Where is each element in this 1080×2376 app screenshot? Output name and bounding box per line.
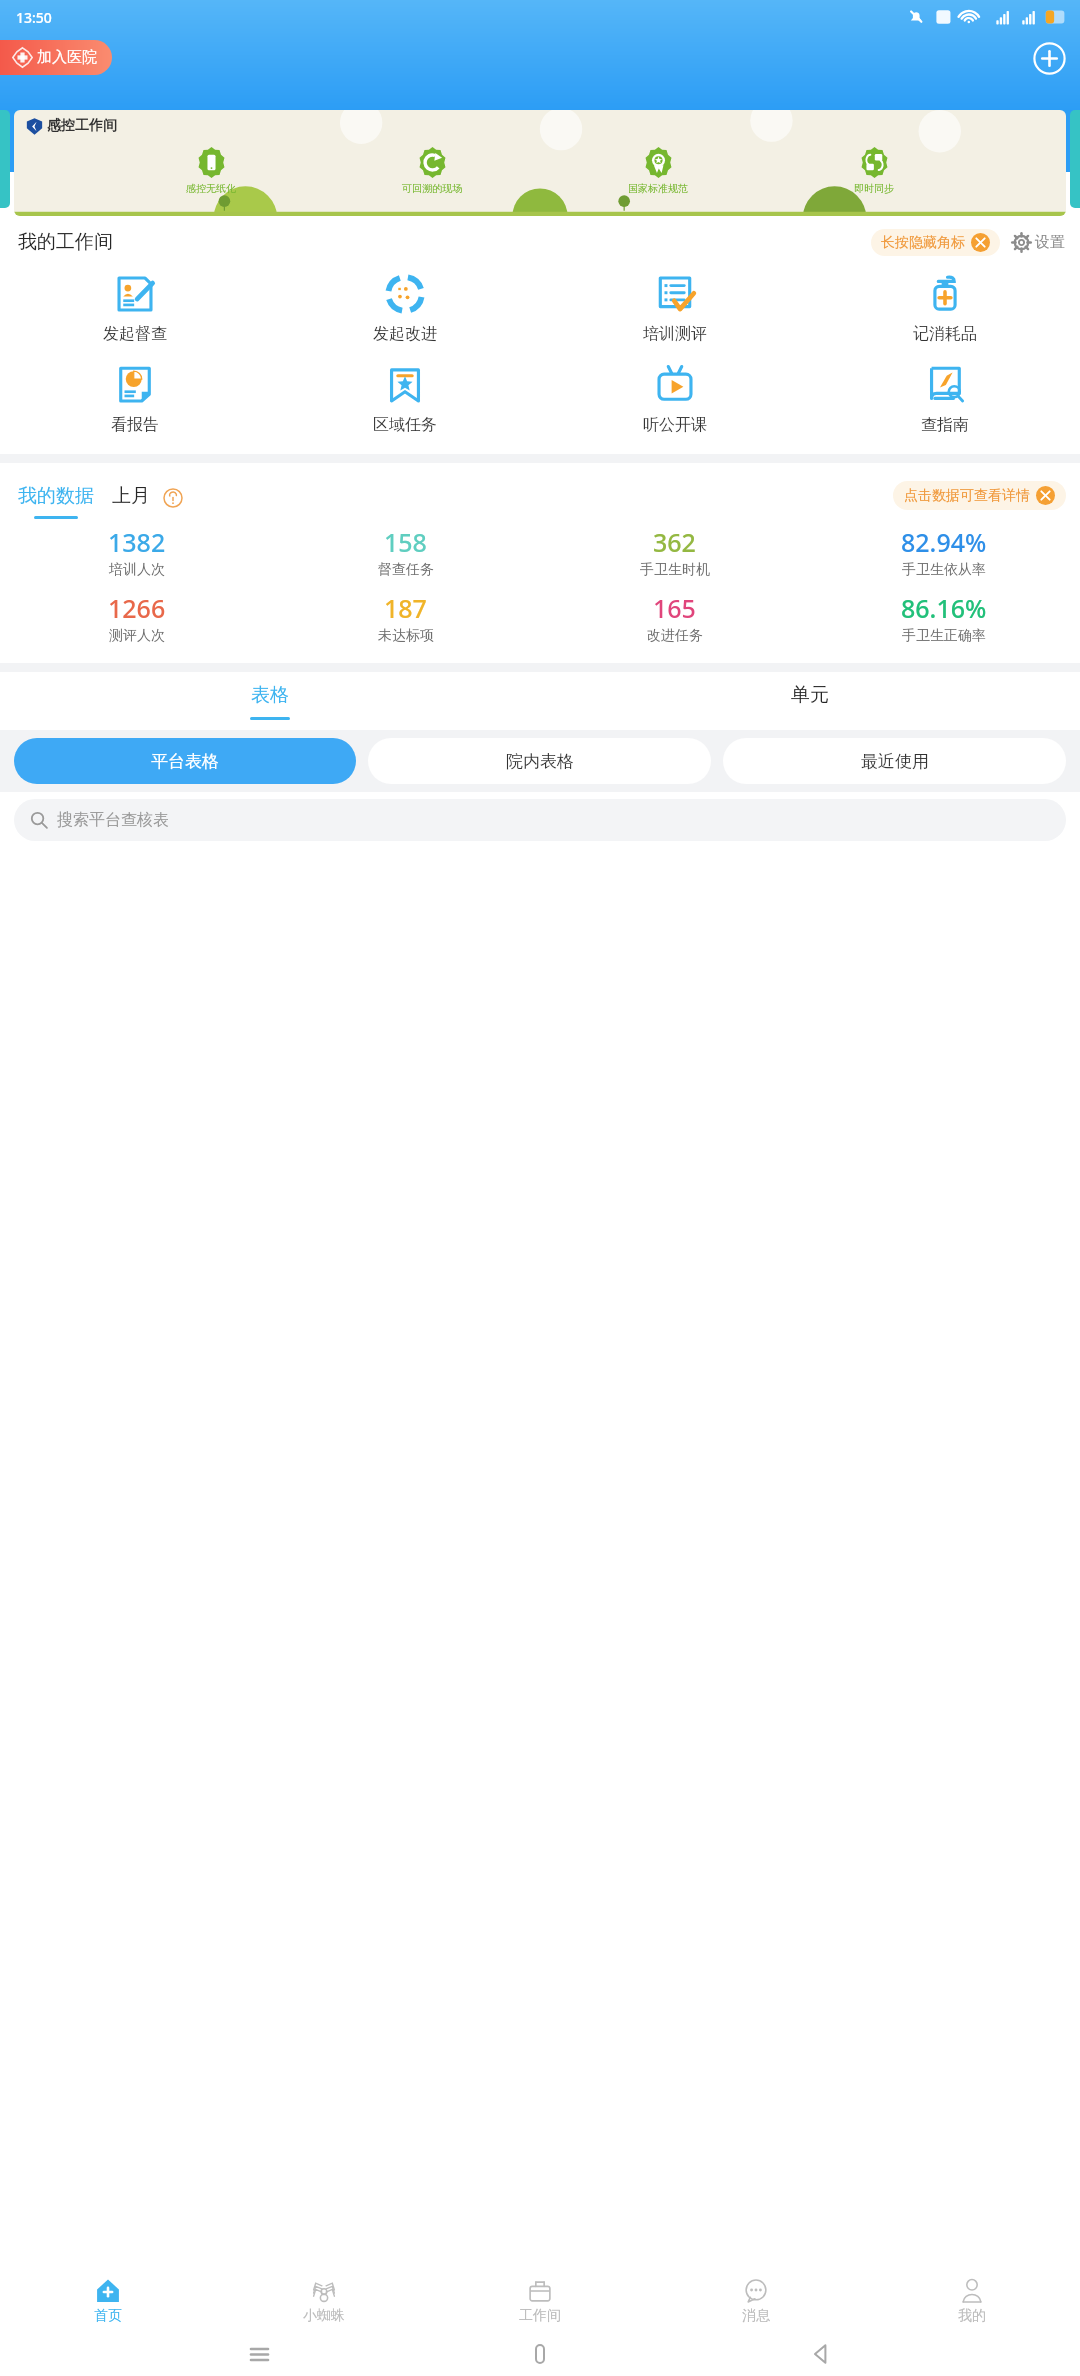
button[interactable]: 我的 <box>864 2270 1080 2332</box>
staticText: 感控工作间 <box>47 117 117 135</box>
button[interactable]: 小蜘蛛 <box>216 2270 432 2332</box>
button[interactable]: 感控工作间 <box>14 110 1066 216</box>
staticText: 手卫生时机 <box>640 561 710 579</box>
staticText: 362 <box>653 525 696 559</box>
staticText: 我的工作间 <box>18 230 113 254</box>
staticText: 设置 <box>1035 233 1065 252</box>
button[interactable]: 平台表格 <box>14 738 356 784</box>
button[interactable]: 培训测评 <box>540 270 810 347</box>
staticText: 86.16% <box>901 591 987 625</box>
staticText: 165 <box>653 591 696 625</box>
button[interactable]: 82.94% <box>809 525 1078 579</box>
button[interactable]: 点击数据可查看详情 <box>893 481 1066 510</box>
staticText: 发起改进 <box>373 324 437 344</box>
staticText: 1382 <box>108 525 166 559</box>
staticText: 培训测评 <box>643 324 707 344</box>
staticText: 单元 <box>791 683 829 707</box>
staticText: 即时同步 <box>854 182 894 195</box>
staticText: 长按隐藏角标 <box>881 234 965 252</box>
button[interactable]: 1382 <box>2 525 271 579</box>
staticText: 手卫生正确率 <box>902 627 986 645</box>
button[interactable]: 主页 <box>518 2332 562 2376</box>
staticText: 上月 <box>112 484 150 508</box>
staticText: 158 <box>384 525 427 559</box>
button[interactable]: 165 <box>540 591 809 645</box>
staticText: 改进任务 <box>647 627 703 645</box>
staticText: 院内表格 <box>506 751 574 772</box>
button[interactable]: 我的数据 <box>18 484 94 519</box>
button[interactable]: 发起督查 <box>0 270 270 347</box>
staticText: 表格 <box>251 683 289 707</box>
button[interactable]: 158 <box>271 525 540 579</box>
button[interactable]: 院内表格 <box>368 738 711 784</box>
button[interactable]: 消息 <box>648 2270 864 2332</box>
staticText: 手卫生依从率 <box>902 561 986 579</box>
button[interactable]: 加入医院 <box>0 40 112 75</box>
staticText: 13:50 <box>16 8 52 27</box>
button[interactable]: 查指南 <box>810 361 1080 438</box>
button[interactable]: 首页 <box>0 2270 216 2332</box>
button[interactable]: 添加 <box>1031 40 1067 76</box>
staticText: 发起督查 <box>103 324 167 344</box>
button[interactable]: 187 <box>271 591 540 645</box>
button[interactable]: 发起改进 <box>270 270 540 347</box>
staticText: 培训人次 <box>109 561 165 579</box>
staticText: 工作间 <box>519 2307 561 2325</box>
staticText: 82.94% <box>901 525 987 559</box>
button[interactable]: 长按隐藏角标 <box>871 229 1000 256</box>
button[interactable]: 86.16% <box>809 591 1078 645</box>
button[interactable]: 最近使用 <box>723 738 1066 784</box>
staticText: 搜索平台查核表 <box>57 810 169 830</box>
staticText: 记消耗品 <box>913 324 977 344</box>
staticText: 点击数据可查看详情 <box>904 487 1030 505</box>
staticText: 督查任务 <box>378 561 434 579</box>
staticText: 首页 <box>94 2307 122 2325</box>
button[interactable]: 帮助 <box>163 488 183 508</box>
staticText: 最近使用 <box>861 751 929 772</box>
staticText: 小蜘蛛 <box>303 2307 345 2325</box>
staticText: 平台表格 <box>151 751 219 772</box>
button[interactable]: 搜索平台查核表 <box>14 799 1066 841</box>
button[interactable]: 区域任务 <box>270 361 540 438</box>
staticText: 听公开课 <box>643 415 707 435</box>
staticText: 查指南 <box>921 415 969 435</box>
staticText: 我的 <box>958 2307 986 2325</box>
button[interactable]: 1266 <box>2 591 271 645</box>
staticText: 我的数据 <box>18 484 94 508</box>
button[interactable]: 表格 <box>0 672 540 730</box>
staticText: 可回溯的现场 <box>402 182 462 195</box>
button[interactable]: 上月 <box>112 484 150 519</box>
staticText: 国家标准规范 <box>628 182 688 195</box>
button[interactable]: 单元 <box>540 672 1080 730</box>
button[interactable]: 返回 <box>799 2332 843 2376</box>
button[interactable]: 设置 <box>1012 233 1065 252</box>
staticText: 加入医院 <box>37 48 97 67</box>
staticText: 未达标项 <box>378 627 434 645</box>
staticText: 感控无纸化 <box>186 182 236 195</box>
staticText: 看报告 <box>111 415 159 435</box>
staticText: 1266 <box>108 591 166 625</box>
button[interactable]: 最近任务 <box>237 2332 281 2376</box>
button[interactable]: 看报告 <box>0 361 270 438</box>
staticText: 区域任务 <box>373 415 437 435</box>
button[interactable]: 记消耗品 <box>810 270 1080 347</box>
button[interactable]: 362 <box>540 525 809 579</box>
staticText: 消息 <box>742 2307 770 2325</box>
staticText: 187 <box>384 591 427 625</box>
button[interactable]: 听公开课 <box>540 361 810 438</box>
staticText: 测评人次 <box>109 627 165 645</box>
button[interactable]: 工作间 <box>432 2270 648 2332</box>
